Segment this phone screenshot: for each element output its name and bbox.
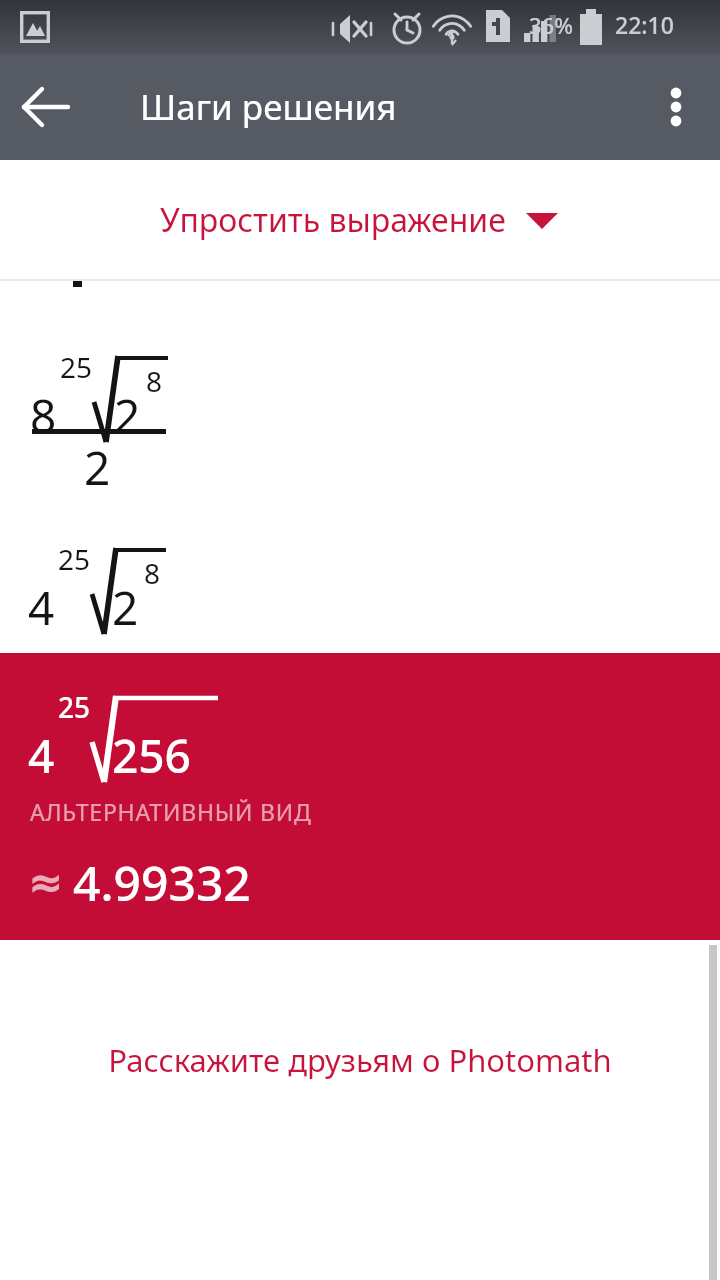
staticText: 25	[60, 348, 93, 386]
staticText: 4.99332	[73, 850, 251, 915]
staticText: Шаги решения	[140, 83, 397, 131]
staticText: 2	[112, 576, 139, 639]
staticText: Расскажите друзьям о Photomath	[108, 1039, 612, 1081]
staticText: 25	[58, 688, 91, 726]
staticText: 8	[30, 384, 57, 447]
staticText: 36%	[529, 10, 573, 40]
staticText: 2	[84, 436, 111, 499]
staticText: Упростить выражение	[160, 198, 506, 242]
button[interactable]: Упростить выражение	[0, 160, 720, 280]
button[interactable]: More options	[638, 69, 714, 145]
staticText: ≈	[28, 858, 64, 907]
button[interactable]: Back	[10, 69, 86, 145]
staticText: 25	[58, 540, 91, 578]
staticText: АЛЬТЕРНАТИВНЫЙ ВИД	[30, 796, 312, 827]
staticText: 4	[28, 724, 55, 787]
staticText: 2	[114, 384, 141, 447]
staticText: 22:10	[615, 9, 674, 40]
staticText: 256	[112, 724, 191, 787]
staticText: 8	[144, 554, 161, 592]
staticText: 4	[28, 576, 55, 639]
button[interactable]: Расскажите друзьям о Photomath	[92, 1029, 628, 1091]
button[interactable]: АЛЬТЕРНАТИВНЫЙ ВИД	[0, 653, 720, 940]
staticText: 8	[146, 362, 163, 400]
